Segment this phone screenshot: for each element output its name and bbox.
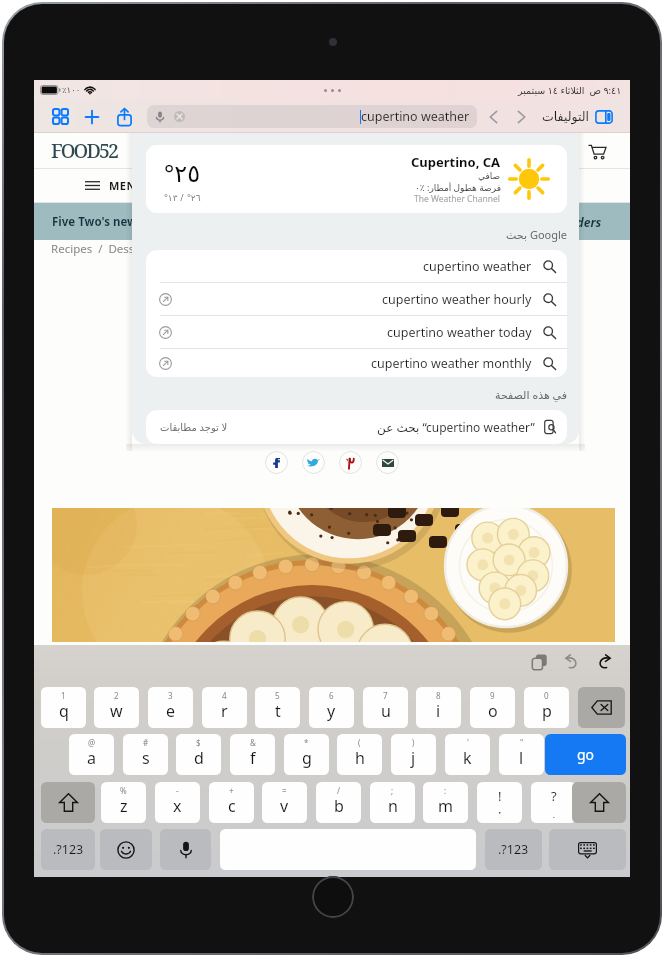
button[interactable]: .?123: [485, 829, 542, 870]
button[interactable]: Share: [110, 100, 138, 133]
staticText: 7: [383, 690, 388, 701]
staticText: go: [577, 745, 595, 764]
staticText: 5: [275, 690, 280, 701]
staticText: Recipes / Desserts: [51, 241, 156, 257]
button[interactable]: #: [123, 734, 168, 775]
button[interactable]: 5: [255, 687, 300, 728]
button[interactable]: Tab overview: [45, 100, 75, 133]
staticText: m: [438, 795, 453, 817]
button[interactable]: =: [262, 782, 307, 823]
button[interactable]: 7: [363, 687, 408, 728]
staticText: 1: [61, 690, 66, 701]
button[interactable]: cupertino weather monthly: [146, 349, 567, 377]
button[interactable]: 4: [202, 687, 247, 728]
staticText: f: [250, 747, 256, 769]
button[interactable]: Shift: [41, 782, 95, 823]
button[interactable]: Cart: [584, 138, 610, 164]
staticText: Five Two's new p: [52, 214, 148, 230]
button[interactable]: (: [337, 734, 382, 775]
button[interactable]: Hide keyboard: [549, 829, 626, 870]
button[interactable]: cupertino weather today: [146, 316, 567, 348]
button[interactable]: !: [477, 782, 522, 823]
button[interactable]: 0: [524, 687, 569, 728]
staticText: b: [334, 795, 344, 817]
staticText: l: [519, 747, 524, 769]
button[interactable]: 3: [148, 687, 193, 728]
button[interactable]: Redo: [592, 649, 618, 675]
button[interactable]: °٢٥: [146, 145, 567, 213]
button[interactable]: Five Two's new p: [34, 203, 630, 240]
button[interactable]: /: [316, 782, 361, 823]
button[interactable]: New tab: [78, 100, 106, 133]
staticText: ?: [551, 787, 557, 805]
button[interactable]: ): [391, 734, 436, 775]
button[interactable]: Undo: [558, 649, 584, 675]
button[interactable]: التوليفات: [539, 100, 591, 133]
staticText: °٢٥: [164, 156, 201, 189]
staticText: z: [120, 795, 128, 817]
button[interactable]: Share link: [376, 451, 399, 474]
button[interactable]: cupertino weather: [147, 105, 477, 128]
button[interactable]: Emoji: [100, 829, 152, 870]
staticText: cupertino weather monthly: [371, 355, 532, 372]
button[interactable]: 1: [41, 687, 86, 728]
button[interactable]: Dictate: [160, 829, 211, 870]
button[interactable]: .?123: [41, 829, 95, 870]
staticText: °٢٦: [187, 191, 201, 203]
button[interactable]: 9: [470, 687, 515, 728]
staticText: فرصة هطول أمطار: ٪٠: [415, 181, 501, 193]
button[interactable]: 2: [94, 687, 139, 728]
button[interactable]: :: [423, 782, 468, 823]
staticText: Orders: [563, 214, 602, 230]
staticText: w: [110, 700, 123, 722]
staticText: ': [467, 737, 469, 748]
button[interactable]: Backspace: [578, 687, 625, 728]
button[interactable]: +: [209, 782, 254, 823]
staticText: a: [87, 747, 96, 769]
button[interactable]: Share link: [339, 451, 362, 474]
button[interactable]: MENU: [81, 169, 149, 202]
staticText: ٩:٤١ ص الثلاثاء ١٤ سبتمبر: [518, 84, 622, 97]
staticText: (: [358, 737, 361, 748]
staticText: بحث Google: [146, 227, 567, 242]
button[interactable]: %: [101, 782, 146, 823]
button[interactable]: 6: [309, 687, 354, 728]
button[interactable]: Forward: [509, 100, 534, 133]
staticText: *: [304, 737, 309, 748]
staticText: 2: [114, 690, 119, 701]
button[interactable]: Share link: [265, 451, 288, 474]
staticText: k: [463, 747, 472, 769]
staticText: v: [280, 795, 289, 817]
staticText: /: [337, 785, 340, 796]
button[interactable]: ": [499, 734, 544, 775]
button[interactable]: Shift: [572, 782, 626, 823]
staticText: /: [178, 191, 187, 203]
button[interactable]: Go: [545, 734, 626, 775]
staticText: o: [488, 700, 498, 722]
button[interactable]: Back: [481, 100, 506, 133]
button[interactable]: Paste: [526, 649, 552, 675]
button[interactable]: &: [230, 734, 275, 775]
staticText: 9: [490, 690, 495, 701]
button[interactable]: ': [445, 734, 490, 775]
button[interactable]: Sidebar: [591, 100, 617, 133]
button[interactable]: *: [284, 734, 329, 775]
staticText: t: [275, 700, 281, 722]
staticText: &: [250, 737, 256, 748]
button[interactable]: Share link: [302, 451, 325, 474]
button[interactable]: لا توجد مطابقات: [146, 410, 567, 444]
button[interactable]: -: [155, 782, 200, 823]
button[interactable]: cupertino weather: [146, 250, 567, 282]
staticText: s: [142, 747, 150, 769]
staticText: =: [282, 785, 287, 796]
button[interactable]: ?: [531, 782, 576, 823]
button[interactable]: ;: [370, 782, 415, 823]
staticText: 4: [222, 690, 227, 701]
button[interactable]: $: [176, 734, 221, 775]
staticText: i: [436, 700, 441, 722]
button[interactable]: @: [69, 734, 114, 775]
staticText: °١٣: [164, 191, 178, 203]
button[interactable]: cupertino weather hourly: [146, 283, 567, 315]
button[interactable]: 8: [416, 687, 461, 728]
